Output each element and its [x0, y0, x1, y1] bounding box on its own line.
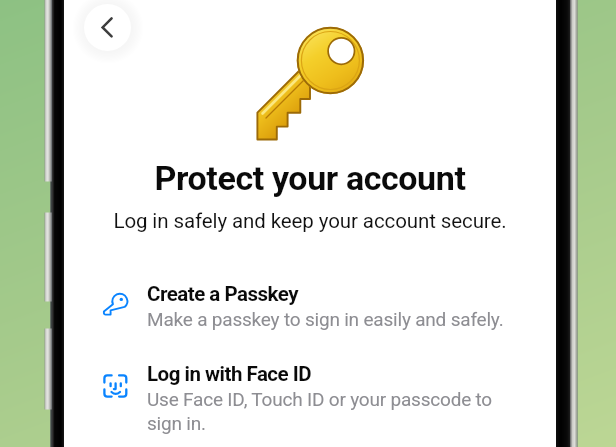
staticText: Protect your account	[64, 158, 556, 198]
staticText: Log in with Face ID	[147, 362, 312, 386]
staticText: Log in safely and keep your account secu…	[64, 209, 556, 233]
button[interactable]: Log in with Face ID	[64, 362, 556, 435]
staticText: Create a Passkey	[147, 282, 299, 306]
button[interactable]: Back	[84, 4, 131, 51]
staticText: Use Face ID, Touch ID or your passcode t…	[147, 388, 530, 435]
button[interactable]: Create a Passkey	[64, 282, 556, 330]
staticText: Make a passkey to sign in easily and saf…	[147, 308, 504, 330]
